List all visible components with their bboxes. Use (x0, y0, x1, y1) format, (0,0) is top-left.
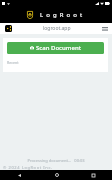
staticText: Scan Document (36, 44, 81, 52)
button[interactable]: Site icon (5, 25, 12, 32)
staticText: logroot.app (43, 25, 71, 32)
staticText: © 2024 LogRoot Inc. (3, 165, 53, 170)
button[interactable]: Scan Document (7, 42, 104, 54)
staticText: Recent (7, 60, 19, 65)
staticText: Processing document... 00:03 (0, 158, 112, 163)
button[interactable]: Home (38, 170, 75, 180)
button[interactable]: Recents (75, 170, 112, 180)
button[interactable]: Back (0, 170, 38, 180)
staticText: LogRoot (40, 11, 86, 19)
button[interactable]: Browser menu (102, 26, 108, 31)
